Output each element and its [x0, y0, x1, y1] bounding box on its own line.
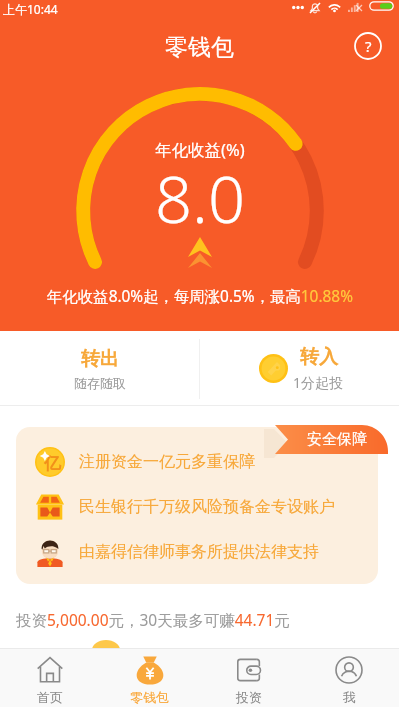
staticText: 1分起投	[293, 373, 344, 392]
staticText: ?	[365, 36, 372, 56]
button[interactable]: 转出	[0, 331, 199, 406]
staticText: 投资	[236, 689, 262, 705]
button[interactable]: 零钱包	[99, 648, 199, 707]
staticText: 年化收益(%)	[155, 138, 245, 161]
button[interactable]: 亿	[35, 439, 378, 484]
staticText: 安全保障	[307, 430, 367, 449]
staticText: 转出	[81, 347, 119, 371]
staticText: 上午10:44	[3, 1, 58, 17]
staticText: 首页	[37, 689, 63, 705]
button[interactable]: 由嘉得信律师事务所提供法律支持	[35, 529, 378, 574]
staticText: 零钱包	[130, 689, 169, 705]
staticText: 投资5,000.00元，30天最多可赚44.71元	[16, 609, 290, 630]
staticText: 转入	[300, 345, 338, 369]
staticText: 随存随取	[74, 375, 126, 391]
button[interactable]: 首页	[0, 648, 99, 707]
button[interactable]: 民生银行千万级风险预备金专设账户	[35, 484, 378, 529]
button[interactable]: 我	[299, 648, 399, 707]
button[interactable]: 转入	[200, 331, 399, 406]
staticText: 亿	[44, 453, 61, 474]
staticText: 8.0	[155, 154, 246, 243]
staticText: 由嘉得信律师事务所提供法律支持	[79, 542, 319, 562]
staticText: 民生银行千万级风险预备金专设账户	[79, 497, 335, 517]
button[interactable]: Help	[354, 32, 382, 60]
staticText: 年化收益8.0%起，每周涨0.5%，最高10.88%	[47, 286, 353, 307]
button[interactable]: 投资	[199, 648, 299, 707]
staticText: 注册资金一亿元多重保障	[79, 452, 255, 472]
staticText: 零钱包	[165, 33, 234, 62]
staticText: 我	[343, 689, 356, 705]
